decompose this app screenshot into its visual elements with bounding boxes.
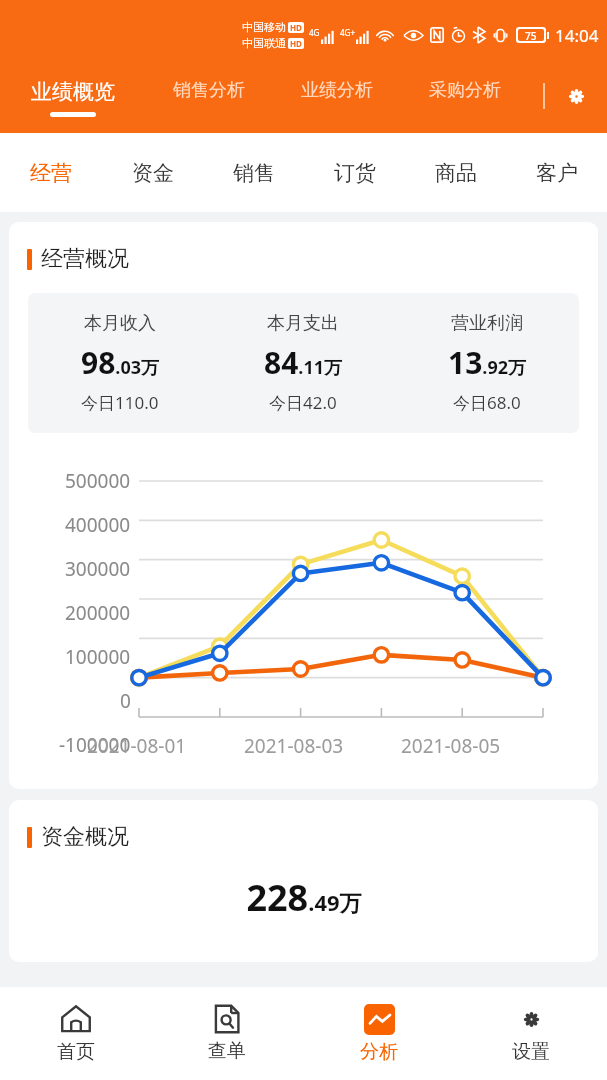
staticText: 本月支出: [267, 312, 339, 335]
button[interactable]: 首页: [0, 987, 151, 1080]
staticText: 采购分析: [429, 79, 501, 102]
staticText: 销售: [233, 160, 275, 186]
staticText: HD: [290, 22, 302, 33]
staticText: 今日68.0: [453, 391, 521, 414]
staticText: 资金: [132, 160, 174, 186]
staticText: 设置: [512, 1040, 550, 1064]
staticText: 中国联通: [242, 36, 286, 50]
staticText: 228.49万: [246, 873, 362, 922]
button[interactable]: 商品: [405, 133, 506, 212]
staticText: 今日110.0: [81, 391, 159, 414]
staticText: 14:04: [555, 24, 599, 47]
staticText: 400000: [65, 512, 131, 538]
button[interactable]: 订货: [304, 133, 405, 212]
staticText: 本月收入: [84, 312, 156, 335]
staticText: 商品: [435, 160, 477, 186]
staticText: 首页: [57, 1040, 95, 1064]
button[interactable]: 采购分析: [401, 70, 529, 133]
button[interactable]: 营业利润: [395, 312, 579, 414]
staticText: 13.92万: [448, 342, 526, 383]
button[interactable]: 设置: [455, 987, 607, 1080]
staticText: 今日42.0: [269, 391, 337, 414]
button[interactable]: 业绩分析: [273, 70, 401, 133]
button[interactable]: 业绩概览: [0, 70, 145, 133]
button[interactable]: 分析: [303, 987, 455, 1080]
staticText: 中国移动: [242, 20, 286, 34]
staticText: 300000: [65, 556, 131, 582]
button[interactable]: 查单: [151, 987, 303, 1080]
staticText: 0: [120, 688, 131, 714]
button[interactable]: 设置: [559, 79, 593, 113]
button[interactable]: 客户: [506, 133, 607, 212]
staticText: 经营概况: [41, 245, 129, 273]
button[interactable]: 本月支出: [211, 312, 395, 414]
staticText: -100000: [59, 732, 131, 758]
staticText: 业绩分析: [301, 79, 373, 102]
staticText: 营业利润: [451, 312, 523, 335]
staticText: HD: [290, 38, 302, 49]
staticText: 500000: [65, 468, 131, 494]
staticText: 4G: [309, 27, 320, 38]
staticText: 84.11万: [264, 342, 342, 383]
staticText: 2021-08-01: [87, 733, 187, 759]
staticText: 75: [525, 29, 537, 41]
staticText: 销售分析: [173, 79, 245, 102]
staticText: 订货: [334, 160, 376, 186]
staticText: 业绩概览: [31, 79, 115, 105]
button[interactable]: 销售分析: [145, 70, 273, 133]
staticText: 经营: [30, 160, 72, 186]
button[interactable]: 经营: [0, 133, 102, 212]
staticText: 资金概况: [41, 823, 129, 851]
staticText: 分析: [360, 1040, 398, 1064]
staticText: 100000: [65, 644, 131, 670]
staticText: 4G+: [340, 27, 355, 38]
staticText: 客户: [536, 160, 578, 186]
button[interactable]: 本月收入: [28, 312, 211, 414]
button[interactable]: 销售: [203, 133, 304, 212]
staticText: 2021-08-03: [244, 733, 344, 759]
staticText: 2021-08-05: [401, 733, 501, 759]
staticText: 98.03万: [81, 342, 159, 383]
staticText: 查单: [208, 1039, 246, 1063]
staticText: 200000: [65, 600, 131, 626]
button[interactable]: 资金: [102, 133, 203, 212]
